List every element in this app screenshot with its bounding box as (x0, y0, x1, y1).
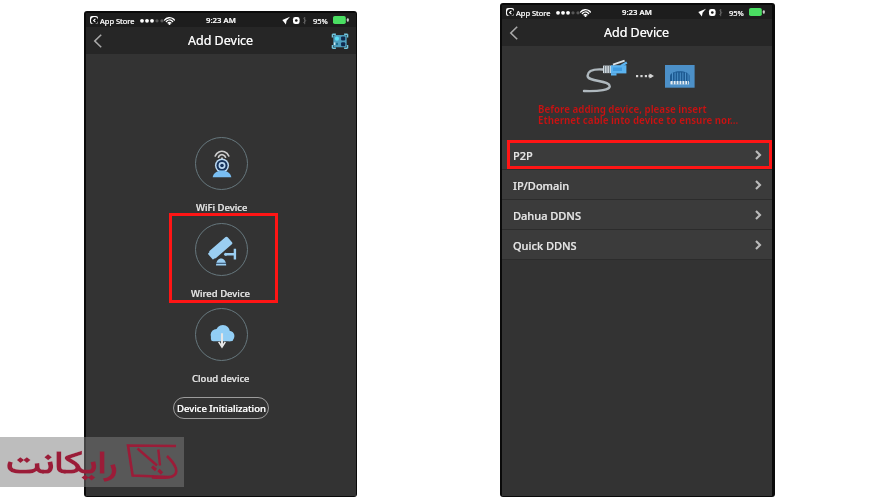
button[interactable]: P2P (502, 140, 772, 170)
staticText: Add Device (188, 32, 254, 49)
button[interactable]: Device Initialization (173, 397, 269, 419)
button[interactable]: Dahua DDNS (502, 200, 772, 230)
button[interactable]: IP/Domain (502, 170, 772, 200)
staticText: P2P (513, 148, 533, 163)
staticText: WiFi Device (196, 201, 248, 214)
staticText: IP/Domain (513, 178, 570, 193)
staticText: Before adding device, please insert Ethe… (538, 103, 739, 127)
staticText: 9:23 AM (206, 15, 236, 26)
staticText: App Store (516, 8, 551, 18)
staticText: Quick DDNS (513, 238, 577, 253)
staticText: 9:23 AM (622, 7, 652, 18)
staticText: Dahua DDNS (513, 208, 581, 223)
staticText: App Store (100, 16, 135, 26)
staticText: رایکانت (6, 441, 118, 490)
button[interactable]: Back (502, 19, 525, 46)
staticText: Add Device (604, 24, 670, 41)
staticText: Cloud device (192, 372, 250, 385)
button[interactable]: Wired Device (191, 223, 251, 300)
staticText: Wired Device (191, 287, 251, 300)
button[interactable]: Back (86, 27, 109, 54)
button[interactable]: Scan QR code (329, 30, 351, 52)
button[interactable]: Quick DDNS (502, 230, 772, 260)
button[interactable]: WiFi Device (195, 137, 248, 214)
staticText: Device Initialization (177, 402, 266, 415)
staticText: 95% (313, 16, 328, 26)
staticText: 95% (729, 8, 744, 18)
button[interactable]: Cloud device (192, 308, 250, 385)
